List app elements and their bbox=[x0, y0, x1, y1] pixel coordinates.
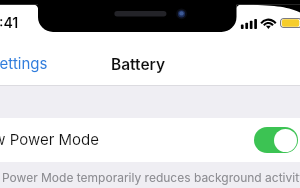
staticText: Low Power Mode temporarily reduces backg… bbox=[0, 170, 275, 185]
staticText: Settings bbox=[0, 54, 48, 72]
staticText: Low Power Mode bbox=[0, 130, 100, 148]
staticText: Battery bbox=[111, 55, 166, 74]
button[interactable]: Low Power Mode, on bbox=[254, 127, 298, 153]
button[interactable]: Back to Settings bbox=[0, 53, 49, 73]
staticText: :41 bbox=[0, 14, 19, 31]
button[interactable]: Low Power Mode bbox=[0, 118, 300, 162]
